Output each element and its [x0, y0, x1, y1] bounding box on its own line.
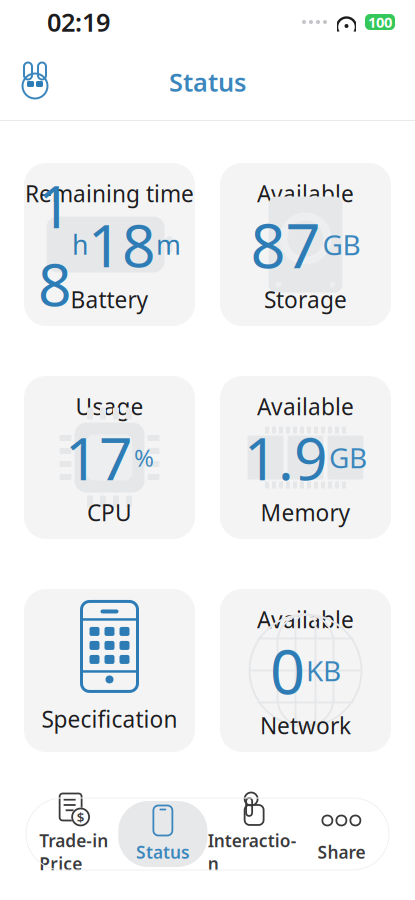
- staticText: Battery: [70, 284, 148, 315]
- staticText: 18: [88, 205, 156, 283]
- staticText: GB: [322, 226, 360, 263]
- staticText: 1.9: [244, 418, 328, 496]
- button[interactable]: Remaining time: [24, 163, 195, 326]
- staticText: Memory: [260, 497, 350, 528]
- staticText: 02:19: [47, 5, 110, 39]
- button[interactable]: Share: [297, 801, 386, 867]
- staticText: 0: [270, 630, 305, 711]
- staticText: %: [134, 442, 154, 473]
- staticText: 87: [250, 204, 320, 285]
- staticText: Available: [257, 604, 354, 634]
- button[interactable]: $: [29, 801, 118, 867]
- button[interactable]: Specification: [24, 589, 195, 752]
- button[interactable]: Usage: [24, 376, 195, 539]
- staticText: Status: [136, 840, 190, 863]
- button[interactable]: App logo: [0, 62, 60, 102]
- staticText: Available: [257, 391, 354, 421]
- staticText: $: [77, 808, 85, 826]
- staticText: Share: [317, 840, 365, 863]
- button[interactable]: Status: [118, 801, 207, 867]
- staticText: CPU: [87, 497, 132, 528]
- staticText: Remaining time: [25, 178, 194, 208]
- staticText: 17: [65, 418, 133, 496]
- staticText: Status: [169, 65, 246, 99]
- staticText: Network: [260, 710, 351, 741]
- staticText: KB: [306, 652, 341, 689]
- button[interactable]: Available: [220, 376, 391, 539]
- button[interactable]: Available: [220, 163, 391, 326]
- staticText: Storage: [264, 284, 347, 315]
- button[interactable]: Available: [220, 589, 391, 752]
- staticText: h: [72, 227, 88, 262]
- staticText: Available: [257, 178, 354, 208]
- staticText: GB: [329, 439, 367, 476]
- staticText: 18: [38, 167, 72, 322]
- staticText: m: [156, 227, 181, 262]
- staticText: Interaction: [208, 829, 297, 875]
- staticText: 100: [368, 12, 392, 32]
- staticText: Usage: [75, 391, 143, 421]
- button[interactable]: Interaction: [207, 801, 297, 867]
- staticText: Trade-in Price: [39, 829, 108, 875]
- staticText: Specification: [41, 704, 177, 734]
